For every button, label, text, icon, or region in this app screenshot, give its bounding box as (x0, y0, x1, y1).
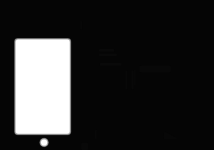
button[interactable]: Home (40, 139, 48, 147)
button[interactable]: Phone preview (15, 39, 70, 134)
